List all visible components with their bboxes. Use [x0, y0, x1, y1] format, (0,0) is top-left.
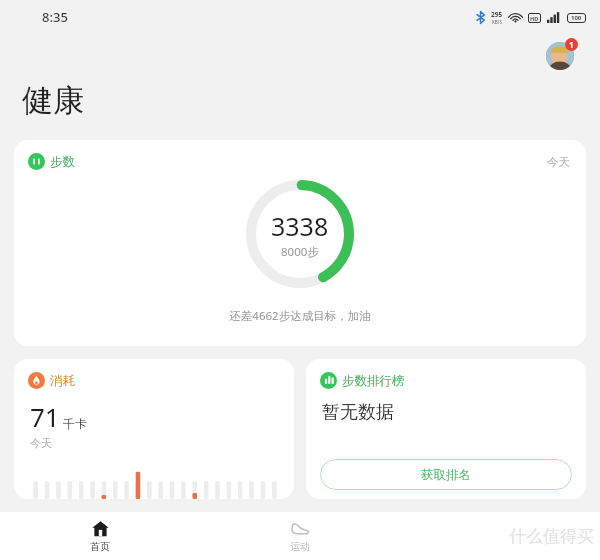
staticText: 千卡	[63, 416, 87, 431]
button[interactable]: 获取排名	[320, 459, 572, 490]
staticText: 获取排名	[421, 467, 471, 483]
staticText: 3338	[271, 209, 329, 243]
button[interactable]: 消耗	[14, 359, 294, 499]
staticText: 什么值得买	[509, 526, 594, 547]
button[interactable]: 运动	[264, 512, 336, 560]
button[interactable]: Profile	[546, 38, 578, 70]
staticText: 71	[30, 399, 60, 434]
staticText: 健康	[22, 81, 84, 120]
staticText: 100	[571, 14, 582, 22]
staticText: HD	[530, 15, 539, 22]
staticText: 8000步	[281, 244, 319, 260]
button[interactable]: 步数排行榜	[306, 359, 586, 499]
staticText: 295	[491, 10, 503, 19]
staticText: 步数	[50, 154, 75, 170]
button[interactable]: 步数	[14, 140, 586, 346]
staticText: 暂无数据	[322, 401, 394, 424]
button[interactable]: 首页	[64, 512, 136, 560]
staticText: 8:35	[42, 8, 68, 26]
staticText: 消耗	[50, 373, 75, 389]
staticText: 今天	[547, 155, 570, 169]
staticText: 今天	[30, 436, 52, 450]
staticText: 运动	[290, 540, 310, 553]
staticText: 1	[569, 39, 574, 50]
staticText: KB/S	[492, 19, 502, 25]
staticText: 还差4662步达成目标，加油	[229, 308, 371, 324]
staticText: 首页	[90, 540, 110, 553]
staticText: 步数排行榜	[342, 373, 405, 389]
